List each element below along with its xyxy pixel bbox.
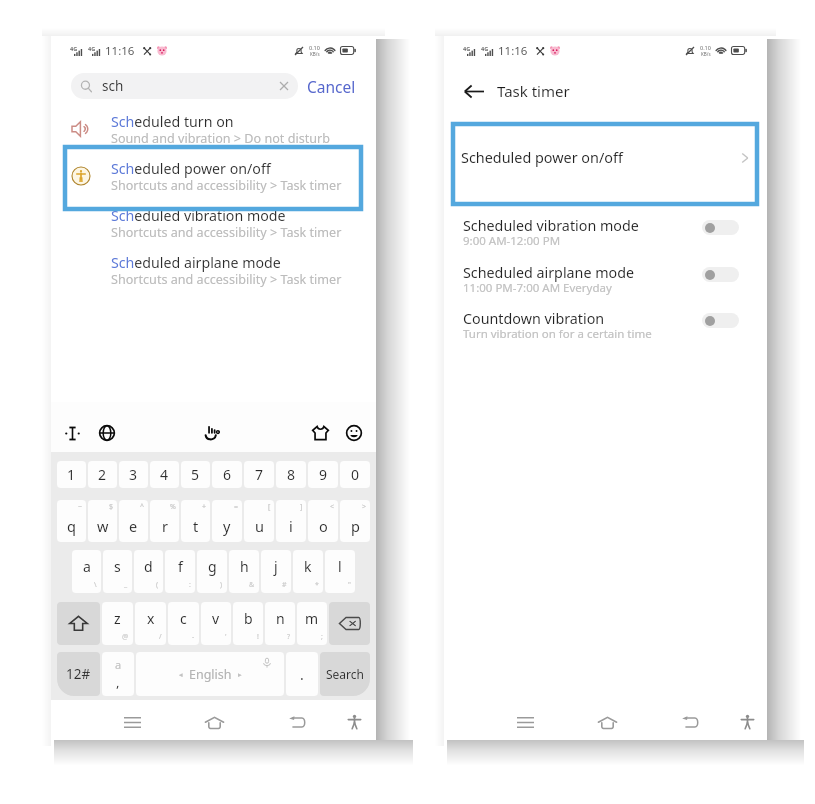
staticText: \ xyxy=(94,580,97,590)
button[interactable]: Scheduled vibration mode xyxy=(51,201,376,248)
button[interactable]: Back xyxy=(282,707,312,737)
button[interactable]: ] xyxy=(276,500,306,542)
staticText: ^ xyxy=(140,502,145,512)
button[interactable]: Back xyxy=(675,707,705,737)
staticText: 11:16 xyxy=(498,43,528,59)
button[interactable]: Handwriting xyxy=(200,421,224,445)
button[interactable]: 3 xyxy=(119,461,148,488)
staticText: & xyxy=(249,580,255,590)
button[interactable]: Scheduled turn on xyxy=(51,107,376,154)
button[interactable]: a xyxy=(102,652,134,696)
button[interactable]: % xyxy=(150,500,179,542)
button[interactable]: . xyxy=(286,652,318,696)
staticText: = xyxy=(234,502,239,512)
button[interactable]: sch xyxy=(71,73,298,99)
button[interactable]: Accessibility xyxy=(339,707,369,737)
staticText: Cancel xyxy=(307,76,356,97)
button[interactable]: 9 xyxy=(308,461,338,488)
staticText: _ xyxy=(124,580,128,590)
button[interactable]: Scheduled power on/off xyxy=(51,154,376,201)
button[interactable]: Shift xyxy=(57,602,100,645)
button[interactable]: ' xyxy=(201,602,231,645)
button[interactable]: Cancel xyxy=(301,73,362,99)
staticText: Turn vibration on for a certain time xyxy=(463,326,652,342)
button[interactable]: Accessibility xyxy=(732,707,762,737)
staticText: v xyxy=(212,609,220,628)
button[interactable]: Home xyxy=(592,707,622,737)
button[interactable]: Text cursor xyxy=(60,421,84,445)
button[interactable]: ◂ xyxy=(136,652,284,696)
button[interactable]: Recents xyxy=(510,707,540,737)
button[interactable]: ; xyxy=(297,602,327,645)
button[interactable]: Backspace xyxy=(329,602,370,645)
button[interactable]: $ xyxy=(88,500,117,542)
staticText: x xyxy=(147,609,155,628)
button[interactable]: 12# xyxy=(57,652,100,696)
button[interactable]: 1 xyxy=(57,461,86,488)
staticText: Scheduled power on/off xyxy=(111,159,271,178)
staticText: Shortcuts and accessibility > Task timer xyxy=(111,271,342,288)
staticText: . xyxy=(300,665,304,684)
staticText: 2 xyxy=(98,465,107,484)
button[interactable]: ~ xyxy=(57,500,86,542)
staticText: 1 xyxy=(67,465,76,484)
staticText: 0.10 xyxy=(309,44,320,51)
button[interactable]: 8 xyxy=(276,461,306,488)
button[interactable]: Home xyxy=(199,707,229,737)
button[interactable]: 7 xyxy=(244,461,274,488)
button[interactable]: \ xyxy=(72,550,101,593)
button[interactable]: Scheduled power on/off xyxy=(453,124,757,204)
button[interactable] xyxy=(65,147,361,209)
button[interactable]: ! xyxy=(233,602,263,645)
button[interactable]: ? xyxy=(265,602,295,645)
button[interactable]: @ xyxy=(102,602,133,645)
button[interactable]: Countdown vibration xyxy=(444,309,767,355)
button[interactable]: ) xyxy=(197,550,227,593)
button[interactable]: " xyxy=(325,550,355,593)
button[interactable]: Recents xyxy=(117,707,147,737)
button[interactable]: 6 xyxy=(212,461,242,488)
button[interactable]: / xyxy=(135,602,166,645)
button[interactable]: 0 xyxy=(340,461,370,488)
button[interactable]: Emoji xyxy=(342,421,366,445)
staticText: > xyxy=(362,502,367,512)
button[interactable]: > xyxy=(340,500,370,542)
staticText: 11:00 PM-7:00 AM Everyday xyxy=(463,280,612,296)
button[interactable]: _ xyxy=(103,550,132,593)
staticText: ! xyxy=(257,632,259,642)
staticText: c xyxy=(180,609,187,628)
button[interactable]: + xyxy=(181,500,210,542)
staticText: ) xyxy=(220,580,223,590)
button[interactable]: * xyxy=(293,550,323,593)
button[interactable]: ( xyxy=(134,550,163,593)
button[interactable]: < xyxy=(308,500,338,542)
staticText: a xyxy=(115,657,122,672)
staticText: 9:00 AM-12:00 PM xyxy=(463,233,561,249)
staticText: n xyxy=(276,609,285,628)
staticText: 9 xyxy=(319,465,328,484)
staticText: % xyxy=(170,502,176,512)
staticText: English xyxy=(189,666,232,683)
button[interactable]: [ xyxy=(244,500,274,542)
button[interactable]: Back xyxy=(459,76,489,106)
button[interactable]: - xyxy=(168,602,199,645)
button[interactable]: 5 xyxy=(181,461,210,488)
button[interactable]: Scheduled airplane mode xyxy=(444,263,767,309)
staticText: b xyxy=(244,609,253,628)
button[interactable]: Clear xyxy=(273,75,295,97)
button[interactable]: : xyxy=(165,550,195,593)
staticText: z xyxy=(114,609,121,628)
button[interactable]: 2 xyxy=(88,461,117,488)
button[interactable]: 4 xyxy=(150,461,179,488)
button[interactable]: Scheduled airplane mode xyxy=(51,248,376,295)
button[interactable]: & xyxy=(229,550,259,593)
button[interactable]: Scheduled vibration mode xyxy=(444,216,767,262)
button[interactable]: = xyxy=(212,500,242,542)
button[interactable]: Language xyxy=(95,421,119,445)
button[interactable]: # xyxy=(261,550,291,593)
staticText: @ xyxy=(122,632,129,642)
button[interactable]: Keyboard theme xyxy=(308,421,332,445)
staticText: ' xyxy=(225,632,227,642)
button[interactable]: Search xyxy=(320,652,370,696)
button[interactable]: ^ xyxy=(119,500,148,542)
